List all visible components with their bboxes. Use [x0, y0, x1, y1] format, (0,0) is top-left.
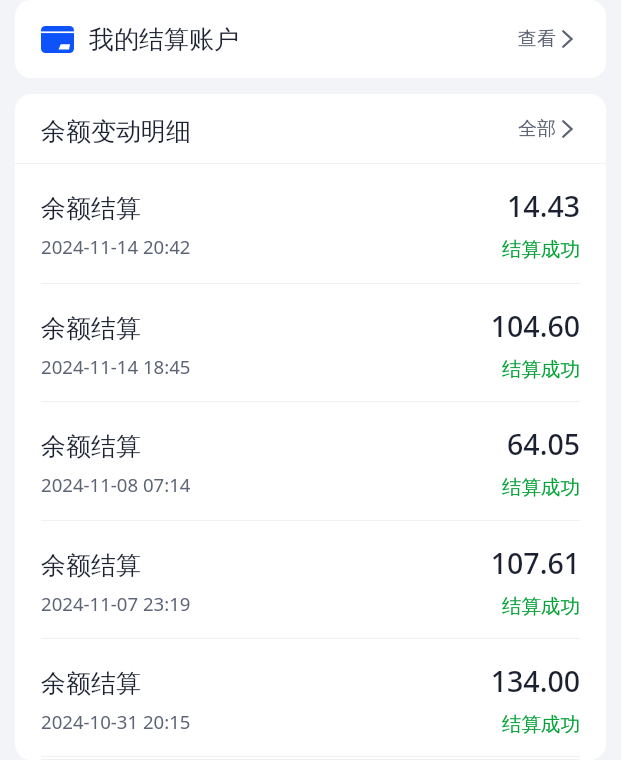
staticText: 104.60 — [490, 307, 580, 346]
button[interactable]: 余额变动明细 — [15, 94, 606, 163]
staticText: 14.43 — [507, 187, 580, 226]
staticText: 余额结算 — [41, 668, 141, 699]
staticText: 107.61 — [490, 544, 580, 583]
staticText: 结算成功 — [501, 594, 580, 619]
staticText: 余额结算 — [41, 313, 141, 344]
button[interactable]: 余额结算 — [15, 521, 606, 639]
button[interactable]: 余额结算 — [15, 284, 606, 402]
other: 查看 — [562, 30, 580, 48]
staticText: 结算成功 — [501, 237, 580, 262]
staticText: 结算成功 — [501, 357, 580, 382]
staticText: 余额结算 — [41, 550, 141, 581]
other: 全部 — [562, 120, 580, 138]
staticText: 全部 — [518, 117, 556, 141]
button[interactable]: 余额结算 — [15, 639, 606, 757]
button[interactable]: 余额结算 — [15, 402, 606, 521]
staticText: 余额变动明细 — [41, 116, 191, 147]
staticText: 余额结算 — [41, 193, 141, 224]
staticText: 2024-11-08 07:14 — [41, 472, 191, 497]
staticText: 我的结算账户 — [89, 24, 239, 55]
staticText: 余额结算 — [41, 431, 141, 462]
staticText: 查看 — [518, 27, 556, 51]
staticText: 2024-10-31 20:15 — [41, 709, 191, 734]
staticText: 结算成功 — [501, 475, 580, 500]
staticText: 2024-11-14 20:42 — [41, 234, 191, 259]
staticText: 2024-11-14 18:45 — [41, 354, 191, 379]
staticText: 134.00 — [490, 662, 580, 701]
button[interactable]: 我的结算账户 — [15, 0, 606, 78]
button[interactable]: 余额结算 — [15, 757, 606, 760]
staticText: 64.05 — [507, 425, 580, 464]
staticText: 2024-11-07 23:19 — [41, 591, 191, 616]
staticText: 结算成功 — [501, 712, 580, 737]
button[interactable]: 余额结算 — [15, 164, 606, 284]
